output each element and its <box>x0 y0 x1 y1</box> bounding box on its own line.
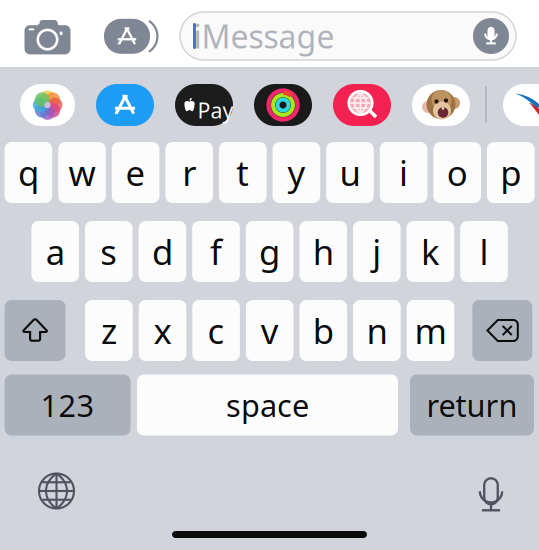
button[interactable]: e <box>112 142 159 203</box>
button[interactable]: b <box>299 300 347 361</box>
staticText: e <box>126 149 146 195</box>
staticText: iMessage <box>193 15 334 57</box>
staticText: p <box>500 149 521 195</box>
staticText: f <box>210 228 222 274</box>
staticText: return <box>426 385 517 425</box>
button[interactable]: v <box>246 300 293 361</box>
staticText: l <box>479 228 488 274</box>
button[interactable]: k <box>407 221 454 282</box>
button[interactable]: o <box>433 142 481 203</box>
staticText: d <box>152 228 173 274</box>
staticText: o <box>447 149 468 195</box>
button[interactable]: h <box>299 221 347 282</box>
button[interactable]: t <box>219 142 267 203</box>
button[interactable]: y <box>273 142 320 203</box>
button[interactable]: j <box>353 221 401 282</box>
button[interactable]: r <box>165 142 213 203</box>
staticText: n <box>366 307 387 353</box>
button[interactable]: w <box>58 142 106 203</box>
staticText: x <box>153 307 171 353</box>
button[interactable]: Apple Pay <box>175 84 233 126</box>
button[interactable]: Take photo <box>24 20 70 55</box>
button[interactable]: Photo search <box>333 84 391 126</box>
staticText: w <box>68 149 95 195</box>
button[interactable]: Dictate <box>473 18 509 54</box>
staticText: space <box>226 385 309 425</box>
staticText: z <box>101 307 117 353</box>
staticText: m <box>414 307 446 353</box>
button[interactable]: c <box>192 300 240 361</box>
staticText: t <box>236 149 249 195</box>
button[interactable]: Shift <box>5 300 66 361</box>
staticText: v <box>261 307 279 353</box>
button[interactable]: Fitness <box>254 84 312 126</box>
button[interactable]: Space <box>137 374 398 435</box>
button[interactable]: Dictation <box>467 472 515 520</box>
button[interactable]: App Store <box>100 19 154 54</box>
button[interactable]: u <box>326 142 374 203</box>
button[interactable]: l <box>460 221 508 282</box>
button[interactable]: p <box>487 142 535 203</box>
staticText: k <box>421 228 440 274</box>
staticText: q <box>18 149 39 195</box>
staticText: r <box>182 149 196 195</box>
staticText: b <box>313 307 334 353</box>
button[interactable]: f <box>192 221 240 282</box>
button[interactable]: z <box>85 300 133 361</box>
button[interactable]: Memoji <box>412 84 470 126</box>
button[interactable]: g <box>246 221 293 282</box>
button[interactable]: App Store <box>96 84 154 126</box>
staticText: 123 <box>41 385 95 425</box>
button[interactable]: n <box>353 300 401 361</box>
button[interactable]: s <box>85 221 133 282</box>
button[interactable]: x <box>139 300 186 361</box>
button[interactable]: Delete <box>472 300 532 361</box>
staticText: a <box>46 228 65 274</box>
staticText: h <box>313 228 334 274</box>
button[interactable]: Return <box>410 374 534 435</box>
staticText: Pay <box>197 96 233 124</box>
button[interactable]: q <box>5 142 52 203</box>
button[interactable]: a <box>31 221 79 282</box>
button[interactable]: m <box>407 300 454 361</box>
button[interactable]: Airline app <box>503 84 539 126</box>
staticText: i <box>399 149 408 195</box>
staticText: g <box>259 228 280 274</box>
button[interactable]: i <box>380 142 427 203</box>
staticText: s <box>100 228 117 274</box>
staticText: c <box>208 307 225 353</box>
staticText: u <box>339 149 360 195</box>
staticText: j <box>372 228 381 274</box>
staticText: y <box>287 149 305 195</box>
button[interactable]: Numbers <box>5 374 131 435</box>
button[interactable]: Photos <box>20 84 75 126</box>
button[interactable]: d <box>139 221 186 282</box>
button[interactable]: Next keyboard <box>32 467 80 515</box>
